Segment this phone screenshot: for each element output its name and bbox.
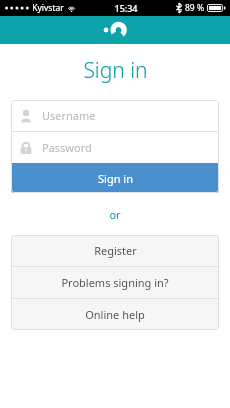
staticText: Kyivstar [32,2,64,14]
staticText: Username [42,108,96,123]
button[interactable]: Sign in [11,163,219,193]
other: Logo [100,21,130,39]
button[interactable]: Problems signing in? [11,267,219,298]
staticText: Online help [85,307,145,322]
button[interactable]: Username [11,100,219,131]
staticText: or [109,207,121,222]
staticText: 15:34 [114,2,138,14]
button[interactable]: Register [11,235,219,266]
staticText: Password [42,140,92,155]
staticText: 89 % [185,2,204,14]
staticText: Sign in [83,56,148,85]
button[interactable]: Online help [11,299,219,330]
button[interactable]: Password [11,132,219,163]
staticText: Problems signing in? [61,275,169,290]
staticText: Register [94,243,137,258]
staticText: Sign in [98,171,133,186]
